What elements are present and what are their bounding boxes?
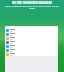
button[interactable]	[5, 36, 58, 40]
button[interactable]	[5, 48, 58, 52]
button[interactable]	[5, 28, 58, 32]
staticText: Store, manage and sync all of your login…	[3, 4, 61, 10]
staticText: SECURE PASSWORD MANAGER	[2, 1, 62, 5]
button[interactable]	[5, 32, 58, 36]
button[interactable]	[5, 44, 58, 48]
button[interactable]	[5, 40, 58, 44]
button[interactable]	[5, 52, 58, 56]
